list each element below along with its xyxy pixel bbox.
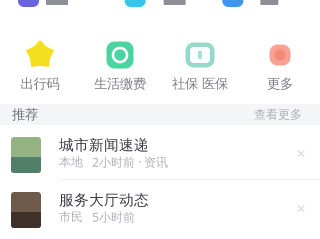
- button[interactable]: 社保 医保: [160, 41, 240, 92]
- staticText: 推荐: [12, 106, 38, 123]
- button[interactable]: 更多: [240, 41, 320, 92]
- staticText: 5小时前: [92, 209, 135, 225]
- button[interactable]: 查看更多: [254, 107, 302, 122]
- button[interactable]: 城市新闻速递: [0, 125, 320, 179]
- staticText: ✕: [296, 202, 306, 216]
- staticText: 社保 医保: [172, 76, 228, 92]
- staticText: 更多: [267, 76, 293, 92]
- staticText: 服务大厅动态: [59, 191, 149, 209]
- button[interactable]: 生活缴费: [80, 41, 160, 92]
- button[interactable]: 出行码: [0, 41, 80, 92]
- button[interactable]: Shortcut: [0, 0, 107, 7]
- staticText: ✕: [296, 147, 306, 161]
- staticText: 城市新闻速递: [59, 136, 149, 154]
- staticText: 市民: [59, 210, 83, 224]
- staticText: 出行码: [20, 76, 59, 92]
- button[interactable]: 服务大厅动态: [0, 180, 320, 234]
- staticText: 生活缴费: [94, 76, 146, 92]
- button[interactable]: Shortcut: [107, 0, 213, 7]
- staticText: 本地: [59, 155, 83, 169]
- button[interactable]: Shortcut: [213, 0, 320, 7]
- staticText: 2小时前 · 资讯: [92, 154, 168, 170]
- staticText: 查看更多: [254, 107, 302, 122]
